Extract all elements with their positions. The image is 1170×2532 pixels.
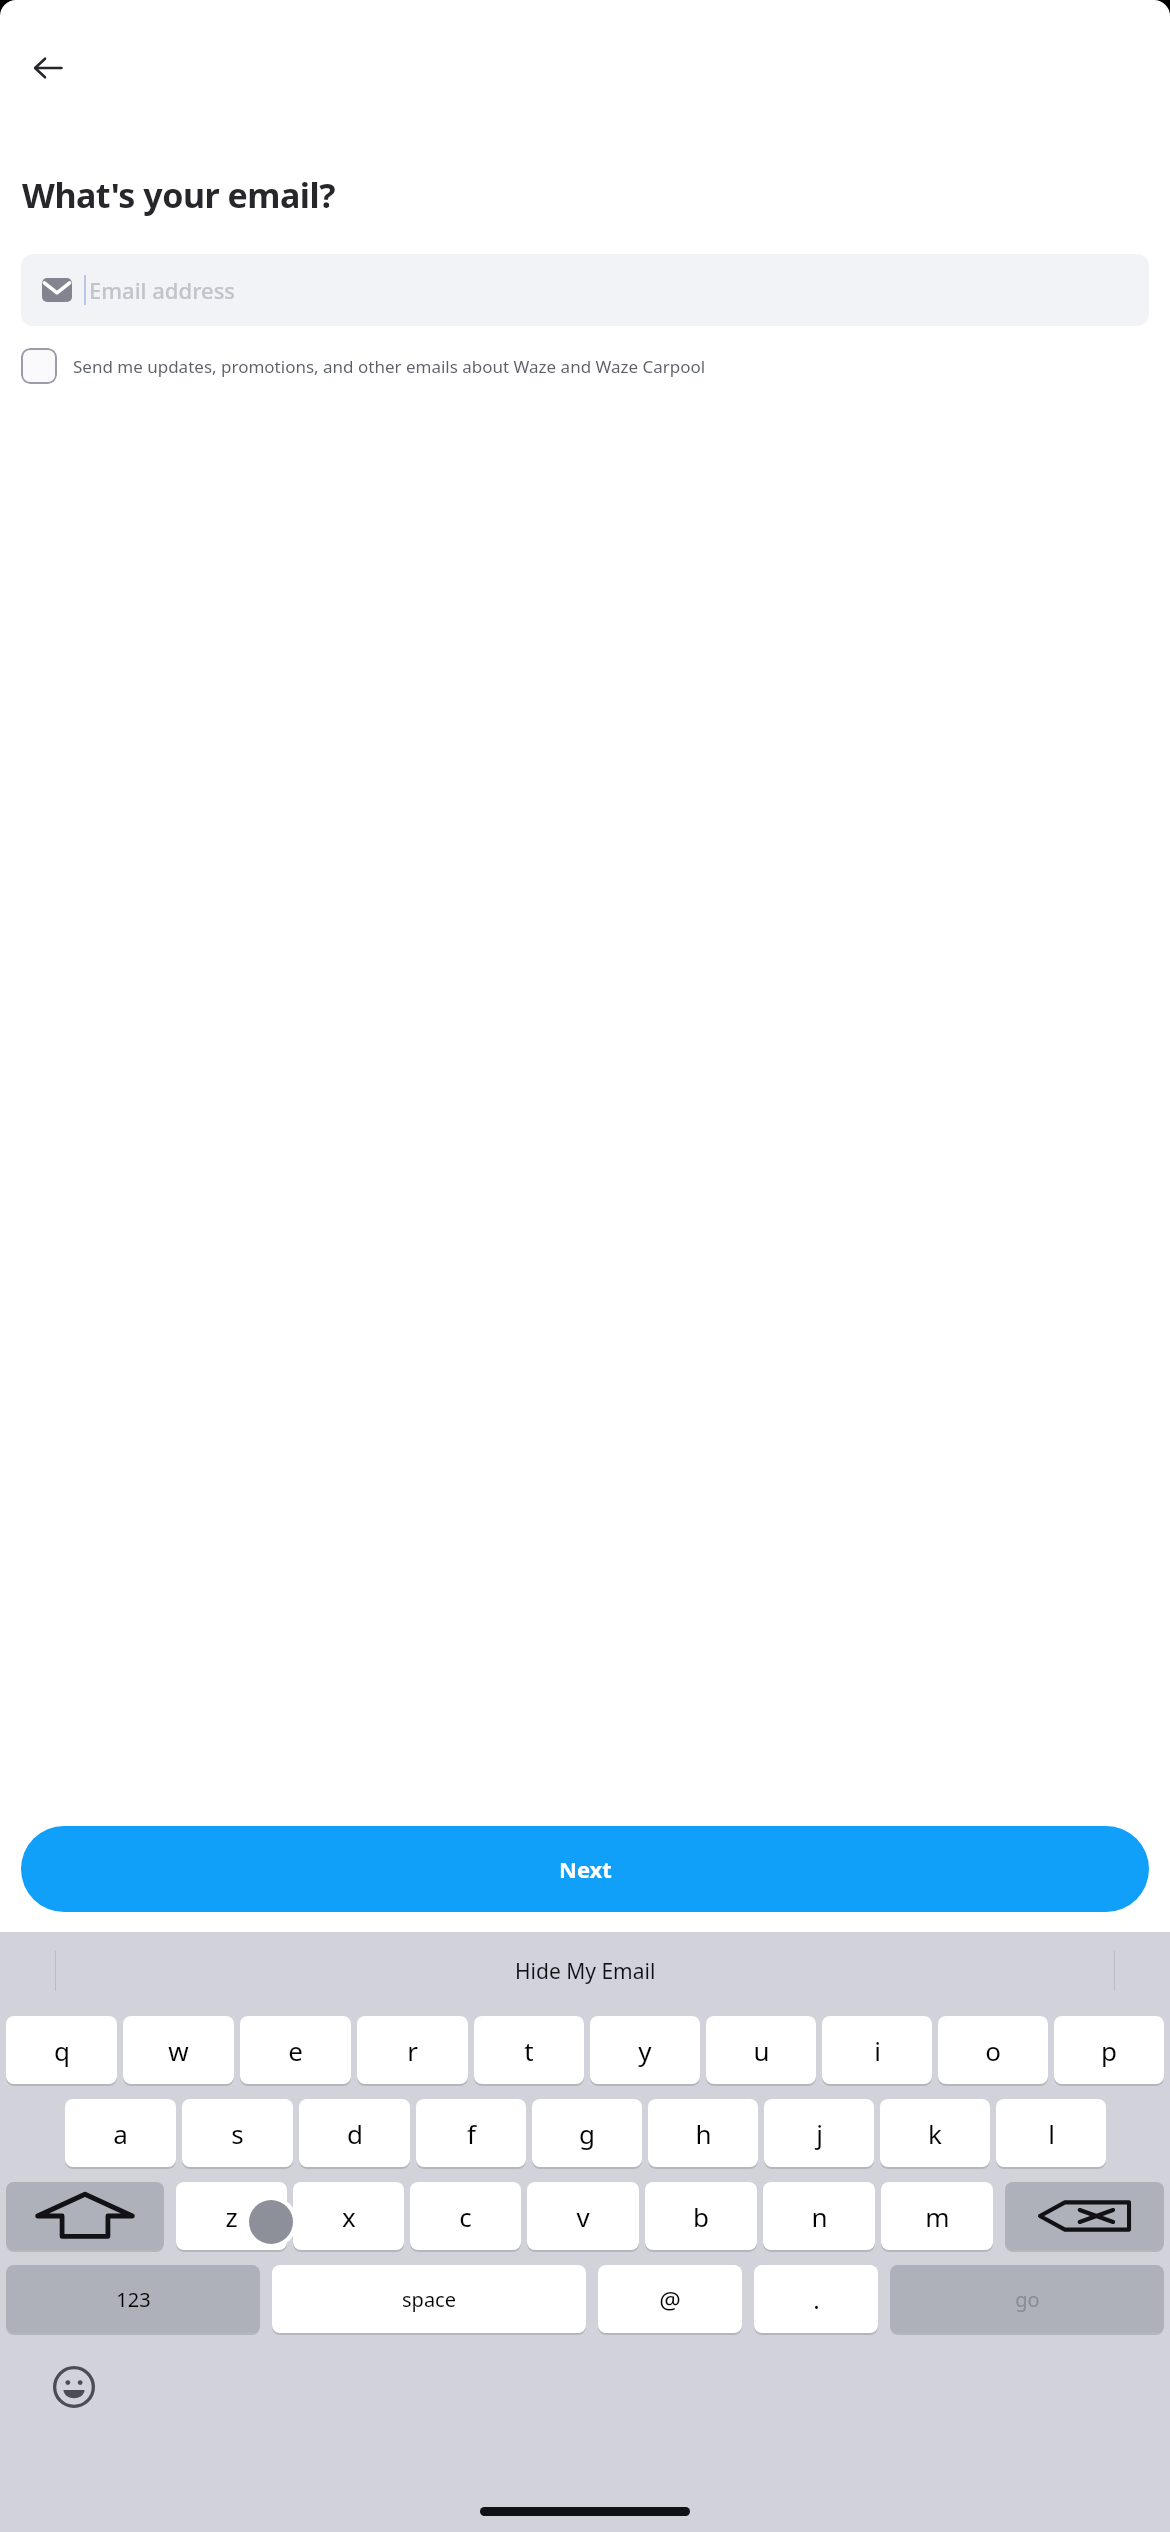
button[interactable]: h [648,2099,758,2167]
staticText: Next [559,1854,612,1884]
staticText: e [288,2033,303,2068]
button[interactable]: w [123,2016,234,2084]
button[interactable]: Next [21,1826,1149,1912]
button[interactable]: r [357,2016,468,2084]
button[interactable]: t [474,2016,584,2084]
staticText: 123 [116,2286,151,2313]
button[interactable]: Emoji [46,2359,102,2415]
staticText: y [638,2033,652,2068]
button[interactable]: i [822,2016,932,2084]
button[interactable]: v [527,2182,639,2250]
staticText: go [1015,2286,1040,2313]
button[interactable]: l [996,2099,1106,2167]
button[interactable]: Back [22,42,74,94]
staticText: k [928,2116,942,2151]
staticText: o [985,2033,1001,2068]
staticText: Hide My Email [515,1957,656,1986]
button[interactable]: f [416,2099,526,2167]
staticText: w [168,2033,189,2068]
button[interactable]: . [754,2265,878,2333]
button[interactable]: z [176,2182,287,2250]
button[interactable]: 123 [6,2265,260,2333]
staticText: Send me updates, promotions, and other e… [73,355,706,378]
button[interactable]: d [299,2099,410,2167]
staticText: l [1048,2116,1055,2151]
staticText: r [407,2033,418,2068]
staticText: g [579,2116,595,2151]
staticText: u [753,2033,770,2068]
staticText: i [874,2033,881,2068]
button[interactable]: u [706,2016,816,2084]
staticText: d [347,2116,363,2151]
button[interactable]: y [590,2016,700,2084]
staticText: @ [659,2283,681,2316]
button[interactable]: Send me updates, promotions, and other e… [21,344,1149,388]
button[interactable]: n [763,2182,875,2250]
button[interactable]: a [65,2099,176,2167]
button[interactable]: Shift [6,2182,164,2250]
staticText: space [402,2286,456,2313]
button[interactable]: m [881,2182,993,2250]
staticText: p [1101,2033,1117,2068]
staticText: a [113,2116,128,2151]
staticText: z [225,2199,238,2234]
staticText: s [231,2116,244,2151]
button[interactable]: k [880,2099,990,2167]
button[interactable]: space [272,2265,586,2333]
button[interactable]: e [240,2016,351,2084]
staticText: v [576,2199,590,2234]
staticText: h [695,2116,712,2151]
staticText: x [342,2199,356,2234]
button[interactable]: j [764,2099,874,2167]
staticText: j [816,2116,823,2151]
staticText: t [524,2033,534,2068]
staticText: c [459,2199,472,2234]
button[interactable]: Email address [21,254,1149,326]
staticText: f [467,2116,476,2151]
button[interactable]: c [410,2182,521,2250]
button[interactable]: q [6,2016,117,2084]
staticText: . [813,2283,820,2316]
button[interactable]: g [532,2099,642,2167]
button[interactable]: Hide My Email [56,1932,1114,2010]
button[interactable]: p [1054,2016,1164,2084]
staticText: m [925,2199,950,2234]
staticText: q [54,2033,70,2068]
button[interactable]: b [645,2182,757,2250]
button[interactable]: go [890,2265,1164,2333]
button[interactable]: x [293,2182,404,2250]
staticText: b [693,2199,709,2234]
button[interactable]: s [182,2099,293,2167]
staticText: Email address [89,275,236,305]
button[interactable]: @ [598,2265,742,2333]
staticText: What's your email? [22,172,335,218]
staticText: n [811,2199,828,2234]
button[interactable]: Backspace [1005,2182,1164,2250]
button[interactable]: o [938,2016,1048,2084]
